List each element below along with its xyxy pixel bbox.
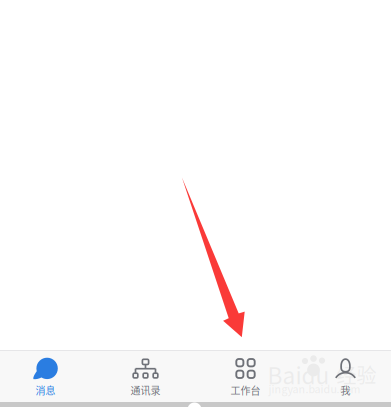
button[interactable]: 通讯录 bbox=[95, 351, 195, 402]
staticText: 通讯录 bbox=[130, 383, 160, 397]
staticText: 我 bbox=[340, 383, 350, 397]
button[interactable]: 消息 bbox=[0, 351, 95, 402]
staticText: 经验 bbox=[336, 360, 376, 389]
staticText: 工作台 bbox=[230, 383, 260, 397]
staticText: Baidu bbox=[267, 358, 329, 391]
button[interactable]: 工作台 bbox=[195, 351, 295, 402]
staticText: 消息 bbox=[35, 383, 55, 397]
staticText: jingyan.baidu.com bbox=[268, 381, 360, 396]
button[interactable]: 我 bbox=[295, 351, 391, 402]
